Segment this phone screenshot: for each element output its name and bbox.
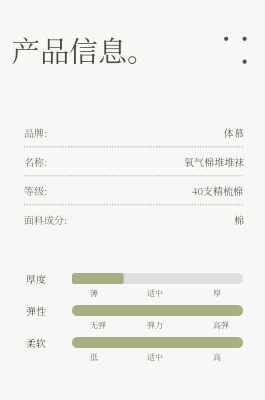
staticText: 高弹 [213, 319, 229, 330]
staticText: 等级: [24, 183, 48, 197]
staticText: 高 [213, 351, 221, 362]
button[interactable]: 品牌: [24, 117, 244, 146]
button[interactable] [72, 273, 243, 284]
button[interactable]: More options [216, 28, 256, 68]
staticText: 厚 [213, 287, 221, 298]
staticText: 体慕 [224, 125, 244, 139]
staticText: 薄 [90, 287, 98, 298]
staticText: 柔软 [26, 335, 46, 349]
staticText: 产品信息。 [11, 29, 157, 71]
staticText: 面料成分: [24, 212, 68, 226]
button[interactable] [72, 305, 243, 316]
staticText: 无弹 [90, 319, 106, 330]
staticText: 名称: [24, 154, 48, 168]
button[interactable]: 面料成分: [24, 204, 244, 233]
staticText: 厚度 [26, 271, 46, 285]
button[interactable]: 名称: [24, 146, 244, 175]
staticText: 适中 [147, 287, 163, 298]
staticText: 弹性 [26, 303, 46, 317]
staticText: 棉 [234, 212, 244, 226]
staticText: 低 [90, 351, 98, 362]
staticText: 适中 [147, 351, 163, 362]
staticText: 40支精梳棉 [192, 183, 244, 197]
staticText: 氧气棉堆堆袜 [184, 154, 244, 168]
staticText: 弹力 [147, 319, 163, 330]
button[interactable] [72, 337, 243, 348]
button[interactable]: 等级: [24, 175, 244, 204]
staticText: 品牌: [24, 125, 48, 139]
